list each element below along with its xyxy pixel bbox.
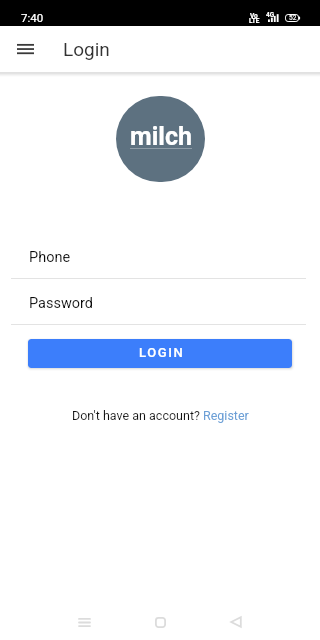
staticText: Vo (250, 12, 258, 20)
staticText: 52 (289, 14, 297, 22)
staticText: Don't have an account? (72, 408, 203, 423)
staticText: Password (29, 295, 94, 312)
staticText: 7:40 (21, 11, 44, 24)
staticText: Login (63, 38, 110, 60)
button[interactable]: Register (203, 408, 249, 423)
staticText: milch (130, 122, 192, 151)
button[interactable]: Home (144, 596, 176, 640)
button[interactable]: Phone (0, 240, 320, 274)
button[interactable]: Back (220, 596, 252, 640)
staticText: LOGIN (139, 345, 185, 360)
button[interactable]: Recents (68, 596, 100, 640)
staticText: Phone (29, 249, 71, 266)
staticText: Register (203, 408, 249, 423)
button[interactable]: LOGIN (28, 339, 292, 368)
staticText: 4G (266, 11, 275, 19)
button[interactable]: Password (0, 286, 320, 320)
button[interactable]: Open navigation menu (8, 31, 42, 65)
staticText: LTE (249, 17, 260, 25)
